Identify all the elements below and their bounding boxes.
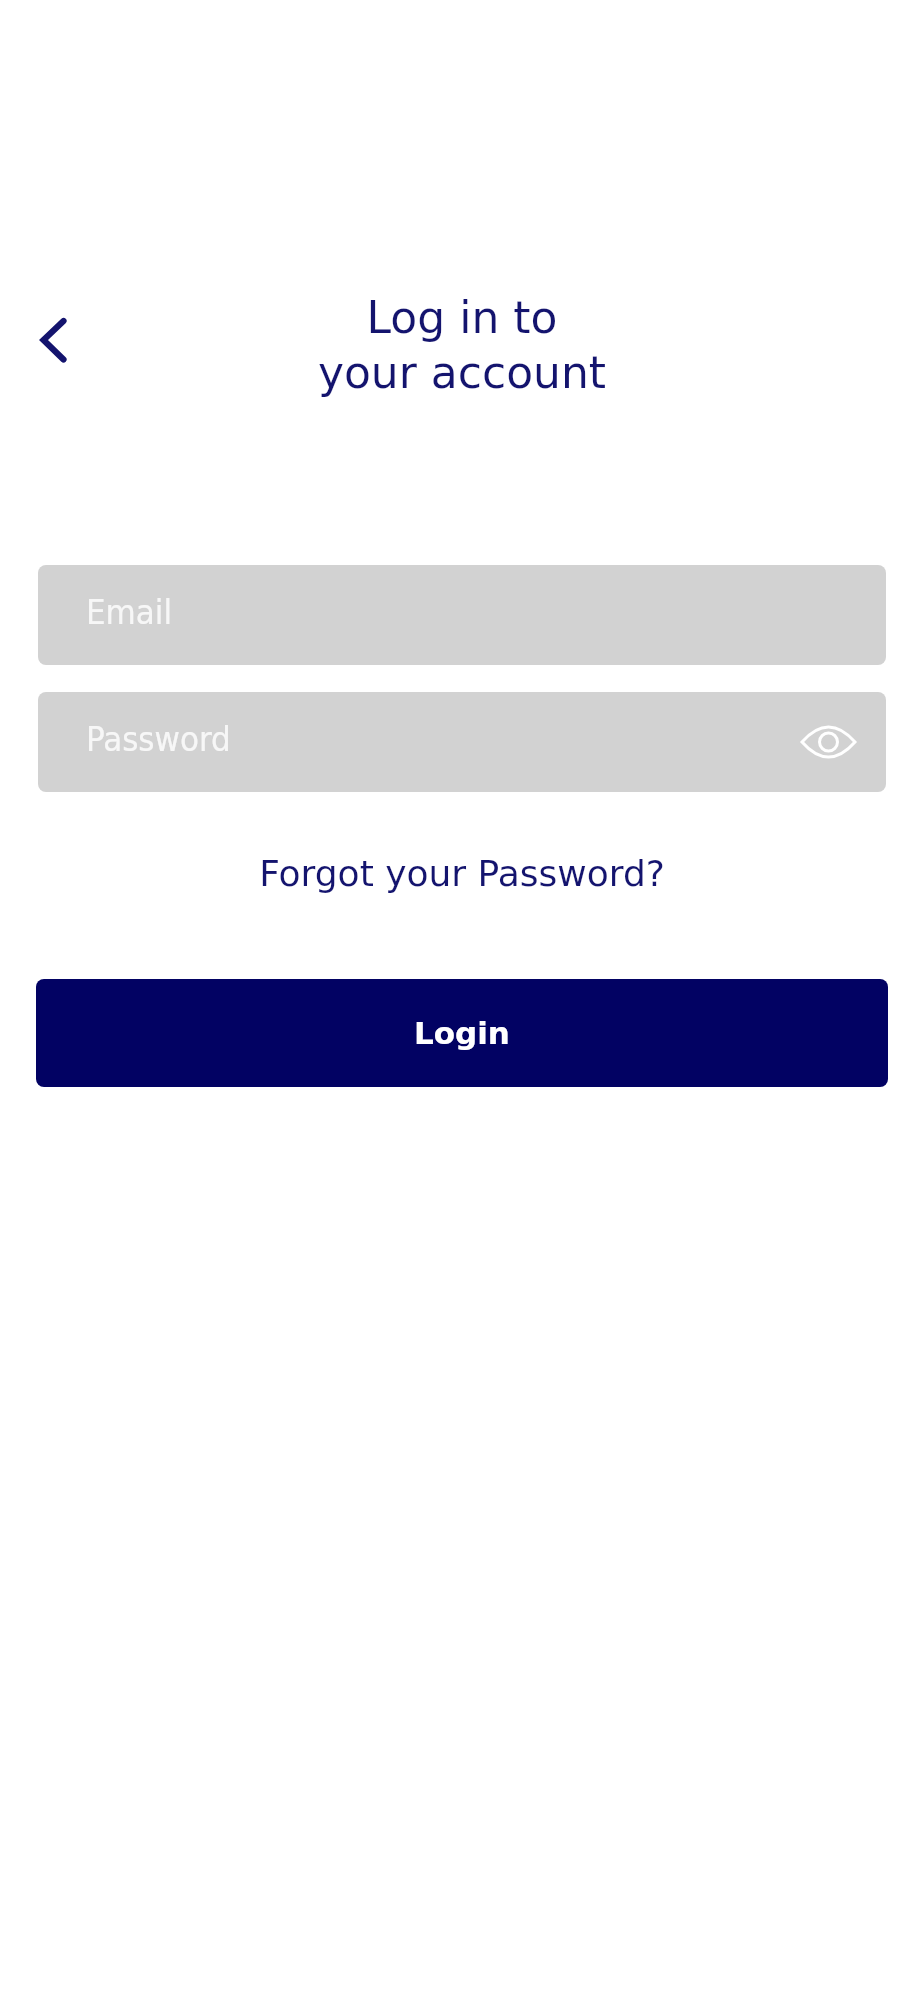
button[interactable]: Password [38,692,886,792]
staticText: Email [86,592,173,632]
button[interactable]: Email [38,565,886,665]
button[interactable]: Forgot your Password? [0,853,924,895]
staticText: Password [86,719,231,759]
staticText: Login [414,1015,510,1051]
staticText: Log in to your account [0,292,924,398]
button[interactable] [27,300,87,380]
button[interactable]: Login [36,979,888,1087]
